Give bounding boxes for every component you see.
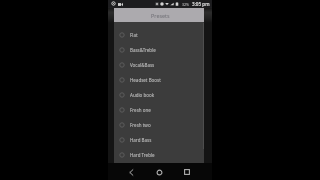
button[interactable]: Home bbox=[151, 164, 167, 180]
staticText: 3:05 pm bbox=[192, 1, 210, 7]
staticText: Hard Treble bbox=[130, 152, 155, 158]
staticText: 32% bbox=[182, 2, 190, 7]
button[interactable]: Hard Treble bbox=[114, 147, 204, 162]
staticText: Audio book bbox=[130, 92, 155, 98]
button[interactable]: Fresh one bbox=[114, 102, 204, 117]
button[interactable]: Audio book bbox=[114, 87, 204, 102]
button[interactable]: Flat bbox=[114, 27, 204, 42]
staticText: Fresh two bbox=[130, 122, 151, 128]
button[interactable]: Hard Bass bbox=[114, 132, 204, 147]
staticText: Fresh one bbox=[130, 107, 151, 113]
button[interactable]: Headset Boost bbox=[114, 72, 204, 87]
button[interactable]: Vocal&Bass bbox=[114, 57, 204, 72]
staticText: Hard Bass bbox=[130, 137, 152, 143]
staticText: Bass&Treble bbox=[130, 47, 156, 53]
button[interactable]: Recents bbox=[179, 164, 195, 180]
staticText: Headset Boost bbox=[130, 77, 161, 83]
button[interactable]: Fresh two bbox=[114, 117, 204, 132]
button[interactable]: Bass&Treble bbox=[114, 42, 204, 57]
button[interactable]: Back bbox=[123, 164, 139, 180]
staticText: Presets bbox=[151, 12, 170, 19]
staticText: Vocal&Bass bbox=[130, 62, 155, 68]
staticText: Flat bbox=[130, 32, 138, 38]
